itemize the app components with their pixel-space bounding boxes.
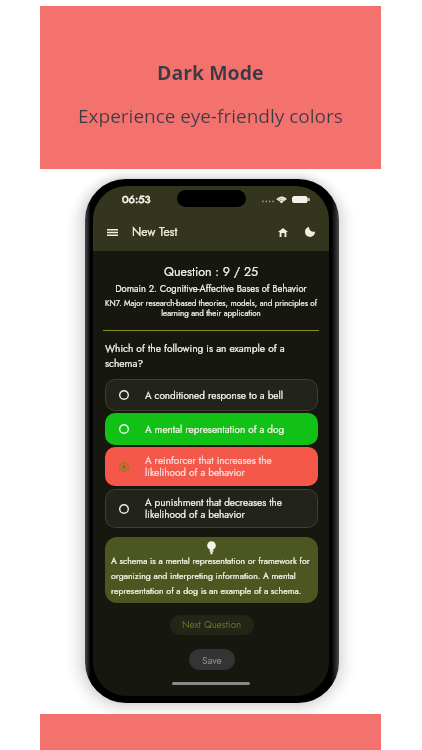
- staticText: Dark Mode: [157, 59, 264, 86]
- button[interactable]: Dark mode: [300, 222, 320, 242]
- staticText: Save: [202, 653, 222, 667]
- button[interactable]: A reinforcer that increases the likeliho…: [105, 447, 318, 486]
- staticText: A reinforcer that increases the likeliho…: [145, 453, 308, 480]
- staticText: Which of the following is an example of …: [105, 341, 318, 371]
- button[interactable]: Next Question: [170, 615, 254, 635]
- staticText: KN7. Major research-based theories, mode…: [100, 297, 322, 319]
- button[interactable]: Save: [189, 649, 235, 670]
- button[interactable]: A mental representation of a dog: [105, 413, 318, 445]
- staticText: A punishment that decreases the likeliho…: [145, 495, 308, 522]
- staticText: A conditioned response to a bell: [145, 388, 284, 402]
- button[interactable]: Menu: [101, 221, 123, 243]
- staticText: Domain 2. Cognitive-Affective Bases of B…: [115, 282, 307, 296]
- staticText: A mental representation of a dog: [145, 422, 285, 436]
- staticText: Next Question: [182, 618, 242, 632]
- staticText: A schema is a mental representation or f…: [111, 555, 312, 597]
- button[interactable]: Home: [273, 222, 293, 242]
- button[interactable]: A conditioned response to a bell: [105, 379, 318, 411]
- button[interactable]: A punishment that decreases the likeliho…: [105, 489, 318, 528]
- staticText: 06:53: [122, 191, 151, 207]
- staticText: Experience eye-friendly colors: [78, 103, 343, 129]
- staticText: Question : 9 / 25: [164, 263, 259, 281]
- staticText: New Test: [132, 223, 178, 240]
